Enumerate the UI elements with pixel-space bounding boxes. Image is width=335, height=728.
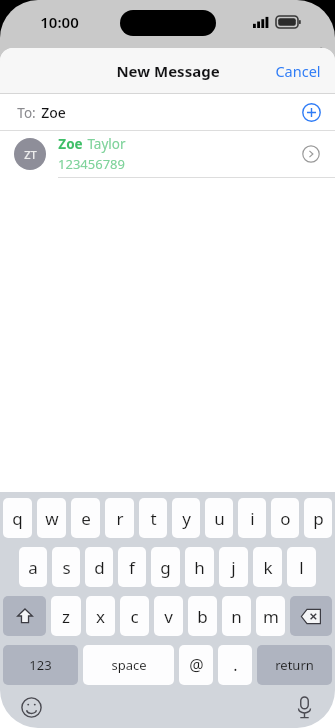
- button[interactable]: f: [118, 547, 146, 587]
- button[interactable]: o: [271, 498, 299, 538]
- button[interactable]: s: [52, 547, 80, 587]
- button[interactable]: d: [85, 547, 113, 587]
- button[interactable]: y: [172, 498, 200, 538]
- staticText: y: [182, 507, 191, 530]
- button[interactable]: Shift: [3, 596, 46, 636]
- button[interactable]: Add contact: [297, 98, 325, 126]
- button[interactable]: ZT: [0, 131, 335, 177]
- staticText: @: [189, 654, 204, 676]
- staticText: Cancel: [275, 61, 321, 81]
- button[interactable]: j: [219, 547, 248, 587]
- staticText: New Message: [116, 61, 220, 81]
- button[interactable]: n: [222, 596, 251, 636]
- button[interactable]: e: [71, 498, 100, 538]
- button[interactable]: @: [179, 645, 213, 685]
- staticText: Zoe: [41, 103, 66, 122]
- button[interactable]: b: [188, 596, 217, 636]
- button[interactable]: w: [37, 498, 66, 538]
- staticText: c: [130, 605, 139, 628]
- staticText: s: [62, 556, 71, 579]
- staticText: b: [197, 605, 208, 628]
- staticText: e: [81, 507, 91, 530]
- button[interactable]: r: [105, 498, 134, 538]
- button[interactable]: p: [304, 498, 332, 538]
- button[interactable]: c: [120, 596, 149, 636]
- staticText: k: [263, 556, 273, 579]
- button[interactable]: Dictation: [289, 692, 319, 722]
- button[interactable]: v: [154, 596, 183, 636]
- staticText: x: [96, 605, 105, 628]
- button[interactable]: h: [185, 547, 214, 587]
- staticText: p: [313, 507, 324, 530]
- button[interactable]: .: [218, 645, 252, 685]
- staticText: ZT: [24, 147, 37, 162]
- staticText: a: [28, 556, 38, 579]
- staticText: h: [194, 556, 205, 579]
- staticText: g: [160, 556, 171, 579]
- button[interactable]: x: [86, 596, 115, 636]
- staticText: .: [233, 654, 238, 676]
- button[interactable]: l: [287, 547, 316, 587]
- staticText: m: [263, 605, 279, 628]
- staticText: To:: [17, 104, 36, 122]
- button[interactable]: m: [256, 596, 285, 636]
- staticText: d: [94, 556, 105, 579]
- button[interactable]: return: [257, 645, 332, 685]
- button[interactable]: Cancel: [261, 51, 335, 91]
- staticText: z: [62, 605, 70, 628]
- staticText: Taylor: [87, 135, 126, 153]
- button[interactable]: space: [83, 645, 174, 685]
- staticText: v: [164, 605, 173, 628]
- staticText: t: [150, 507, 157, 530]
- staticText: i: [250, 507, 255, 530]
- button[interactable]: k: [253, 547, 282, 587]
- staticText: j: [231, 556, 236, 579]
- button[interactable]: t: [139, 498, 167, 538]
- button[interactable]: i: [238, 498, 266, 538]
- staticText: l: [299, 556, 304, 579]
- button[interactable]: Emoji: [16, 692, 46, 722]
- button[interactable]: z: [51, 596, 81, 636]
- staticText: 123: [29, 656, 52, 674]
- button[interactable]: u: [205, 498, 233, 538]
- button[interactable]: Backspace: [290, 596, 332, 636]
- button[interactable]: 123: [3, 645, 78, 685]
- staticText: 10:00: [40, 12, 79, 32]
- staticText: Zoe: [58, 135, 83, 153]
- staticText: q: [12, 507, 23, 530]
- button[interactable]: q: [3, 498, 32, 538]
- button[interactable]: a: [19, 547, 47, 587]
- staticText: f: [129, 556, 135, 579]
- button[interactable]: To:: [0, 94, 335, 130]
- button[interactable]: g: [151, 547, 180, 587]
- staticText: r: [116, 507, 124, 530]
- button[interactable]: Contact details: [297, 140, 325, 168]
- staticText: return: [275, 656, 314, 674]
- staticText: w: [45, 507, 59, 530]
- staticText: u: [214, 507, 225, 530]
- staticText: n: [231, 605, 242, 628]
- staticText: space: [111, 656, 147, 674]
- staticText: o: [280, 507, 291, 530]
- staticText: 123456789: [58, 155, 125, 173]
